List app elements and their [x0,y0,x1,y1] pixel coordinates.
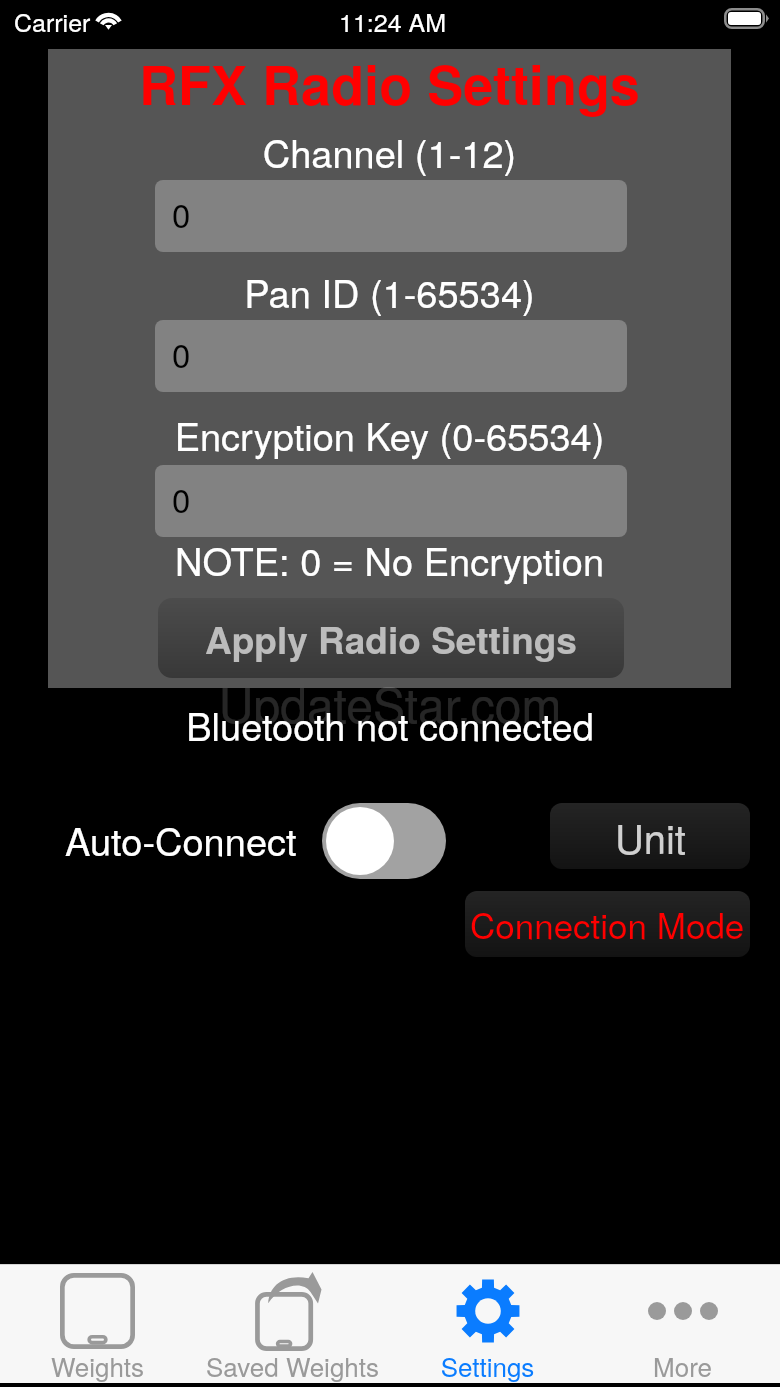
button[interactable]: Auto-Connect toggle [322,803,446,879]
button[interactable]: Unit [550,803,750,869]
staticText: Weights [0,1347,195,1384]
button[interactable]: 0 [155,465,627,537]
staticText: Channel (1-12) [48,124,731,178]
button[interactable]: 0 [155,180,627,252]
staticText: 0 [172,190,191,237]
staticText: Connection Mode [470,899,745,949]
staticText: Settings [390,1347,585,1384]
staticText: Encryption Key (0-65534) [48,407,731,461]
button[interactable]: Connection Mode [465,891,750,957]
button[interactable]: Weights [0,1265,195,1383]
staticText: Unit [615,808,686,865]
staticText: RFX Radio Settings [48,44,731,121]
staticText: 0 [172,330,191,377]
staticText: Apply Radio Settings [205,612,577,665]
button[interactable]: Settings [390,1265,585,1383]
staticText: Pan ID (1-65534) [48,264,731,318]
staticText: NOTE: 0 = No Encryption [48,532,731,586]
button[interactable]: Apply Radio Settings [158,598,624,678]
staticText: 11:24 AM [339,3,447,39]
button[interactable]: 0 [155,320,627,392]
staticText: UpdateStar.com [0,668,780,737]
staticText: Saved Weights [195,1347,390,1384]
button[interactable]: More [585,1265,780,1383]
staticText: Carrier [14,3,91,39]
staticText: Auto-Connect [65,812,297,866]
staticText: 0 [172,475,191,522]
button[interactable]: Saved Weights [195,1265,390,1383]
staticText: More [585,1347,780,1384]
staticText: Bluetooth not connected [0,697,780,751]
